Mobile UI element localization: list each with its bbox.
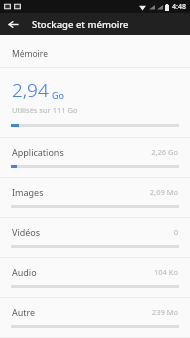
staticText: Audio: [12, 266, 37, 278]
staticText: 2,26 Go: [151, 147, 178, 157]
button[interactable]: Applications: [0, 138, 190, 178]
staticText: 104 Ko: [154, 267, 178, 277]
staticText: Mémoire: [12, 48, 48, 60]
staticText: 2,94: [12, 77, 49, 103]
staticText: Stockage et mémoire: [32, 18, 129, 31]
staticText: Images: [12, 186, 44, 198]
staticText: 2,09 Mo: [149, 187, 178, 197]
staticText: Utilisés sur 111 Go: [12, 105, 78, 115]
staticText: Autre: [12, 306, 36, 318]
button[interactable]: Audio: [0, 258, 190, 298]
staticText: 0: [173, 227, 178, 237]
button[interactable]: Images: [0, 178, 190, 218]
staticText: Go: [52, 89, 64, 101]
staticText: Applications: [12, 146, 64, 158]
button[interactable]: 2,94: [0, 66, 190, 138]
button[interactable]: Autre: [0, 298, 190, 338]
staticText: 4:48: [172, 2, 186, 12]
button[interactable]: Back: [4, 15, 22, 33]
button[interactable]: Vidéos: [0, 218, 190, 258]
staticText: 239 Mo: [151, 307, 178, 317]
staticText: Vidéos: [12, 226, 41, 238]
